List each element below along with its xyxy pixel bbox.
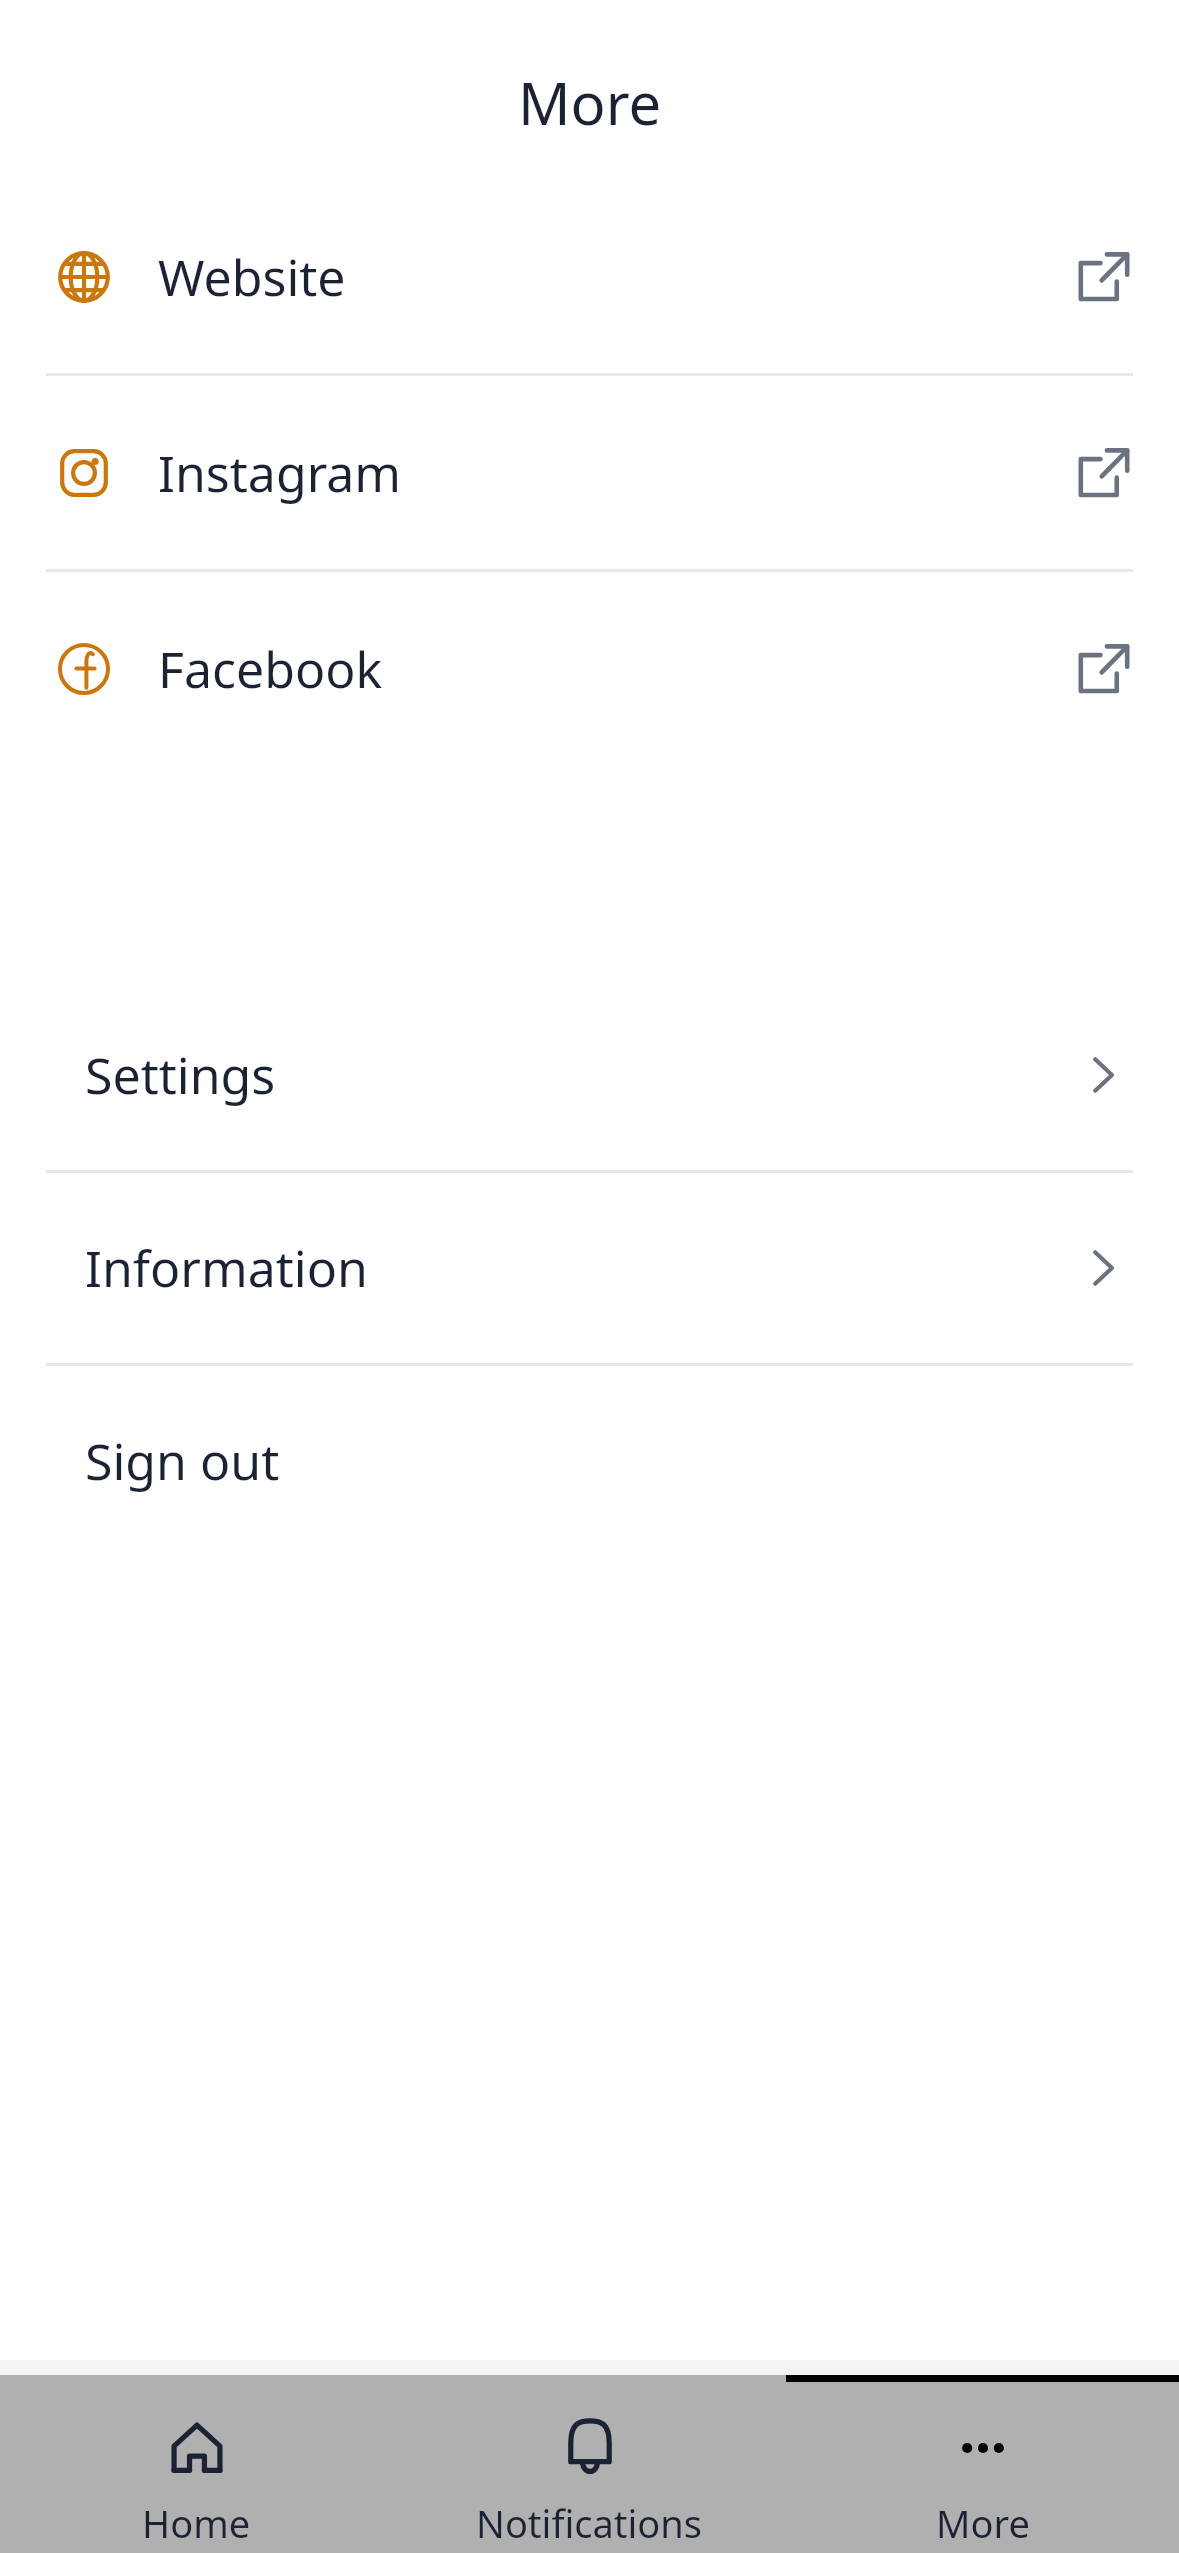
button[interactable]: Website xyxy=(0,180,1179,373)
other: Open Instagram in browser xyxy=(1075,444,1133,502)
button[interactable]: Information xyxy=(0,1173,1179,1363)
button[interactable]: Facebook xyxy=(0,572,1179,765)
button[interactable]: Sign out xyxy=(0,1366,1179,1556)
staticText: Information xyxy=(85,1234,368,1302)
button[interactable]: Notifications xyxy=(393,2375,786,2553)
staticText: Home xyxy=(142,2497,251,2549)
staticText: More xyxy=(518,63,662,142)
staticText: Sign out xyxy=(85,1427,280,1495)
button[interactable]: Home xyxy=(0,2375,393,2553)
staticText: Notifications xyxy=(476,2497,703,2549)
button[interactable]: Instagram xyxy=(0,376,1179,569)
staticText: More xyxy=(936,2497,1030,2549)
other: Open Website in browser xyxy=(1075,248,1133,306)
other: Open Facebook in browser xyxy=(1075,640,1133,698)
button[interactable]: Settings xyxy=(0,980,1179,1170)
staticText: Facebook xyxy=(158,635,383,703)
staticText: Instagram xyxy=(158,439,402,507)
button[interactable]: More xyxy=(786,2375,1179,2553)
staticText: Website xyxy=(158,243,346,311)
staticText: Settings xyxy=(85,1041,276,1109)
